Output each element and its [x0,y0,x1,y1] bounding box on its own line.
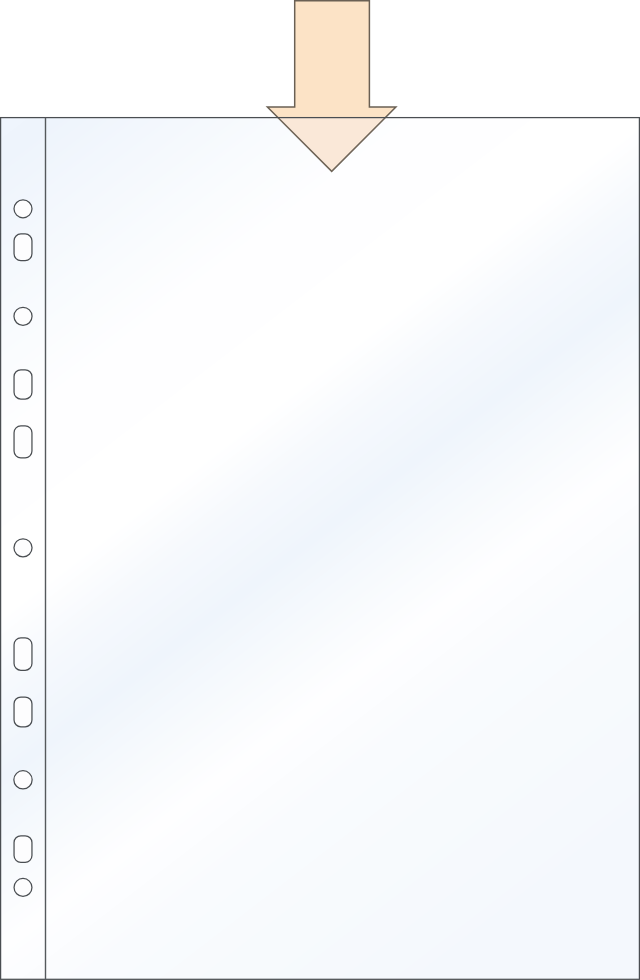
button[interactable]: Insert the sheet into the punched pocket [0,0,640,980]
